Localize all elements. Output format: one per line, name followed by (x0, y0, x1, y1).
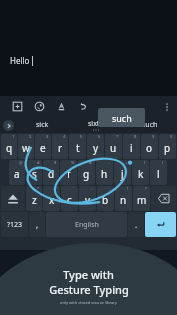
staticText: 5 (80, 134, 83, 139)
staticText: ?123 (7, 220, 23, 230)
staticText: a (14, 167, 20, 181)
staticText: 9 (152, 134, 155, 139)
button[interactable]: - (96, 160, 113, 185)
staticText: " (55, 186, 57, 191)
staticText: g (83, 167, 90, 181)
button[interactable]: , (29, 212, 45, 237)
staticText: z (32, 193, 37, 207)
staticText: n (120, 193, 127, 207)
button[interactable]: 7 (105, 134, 122, 159)
staticText: ? (145, 186, 147, 191)
staticText: m (137, 193, 147, 207)
button[interactable]: Backspace (151, 186, 176, 211)
staticText: ( (144, 160, 146, 165)
button[interactable]: 1 (1, 134, 17, 159)
staticText: % (71, 160, 75, 165)
staticText: s (32, 167, 37, 181)
staticText: x (49, 193, 55, 207)
button[interactable]: ; (97, 186, 114, 211)
button[interactable]: ! (115, 186, 132, 211)
staticText: 0 (170, 134, 173, 139)
staticText: & (89, 160, 92, 165)
button[interactable]: ) (150, 160, 167, 185)
button[interactable]: @ (9, 160, 25, 185)
button[interactable]: English (46, 212, 127, 237)
button[interactable]: ?123 (1, 212, 28, 237)
staticText: j (121, 167, 124, 181)
staticText: f (67, 167, 71, 181)
staticText: 3 (46, 134, 49, 139)
button[interactable]: sixth (69, 117, 123, 133)
button[interactable]: & (78, 160, 95, 185)
staticText: 8 (134, 134, 137, 139)
button[interactable]: Add content (6, 96, 28, 117)
button[interactable]: ' (61, 186, 78, 211)
button[interactable]: # (26, 160, 42, 185)
staticText: . (135, 219, 138, 230)
staticText: u (110, 141, 117, 155)
button[interactable]: % (60, 160, 77, 185)
staticText: English (75, 220, 99, 230)
staticText: k (138, 167, 144, 181)
button[interactable]: . (128, 212, 144, 237)
staticText: Gesture Typing (49, 282, 129, 297)
staticText: Hello (10, 55, 30, 66)
staticText: i (130, 141, 133, 155)
button[interactable]: : (79, 186, 96, 211)
button[interactable]: " (43, 186, 60, 211)
staticText: y (93, 141, 99, 155)
staticText: 4 (63, 134, 66, 139)
staticText: v (85, 193, 91, 207)
staticText: such (142, 120, 158, 130)
staticText: # (37, 160, 40, 165)
button[interactable]: such (98, 108, 145, 127)
button[interactable]: such (123, 117, 177, 133)
staticText: p (164, 141, 171, 155)
button[interactable]: 9 (141, 134, 158, 159)
button[interactable]: 5 (69, 134, 86, 159)
staticText: 6 (98, 134, 101, 139)
staticText: only with closed source library (60, 300, 117, 305)
button[interactable]: More options (157, 97, 177, 117)
staticText: 1 (12, 134, 15, 139)
button[interactable]: 2 (18, 134, 34, 159)
staticText: sick (36, 120, 49, 130)
staticText: b (102, 193, 109, 207)
staticText: w (22, 141, 30, 155)
staticText: e (40, 141, 46, 155)
button[interactable]: Themes (28, 96, 50, 117)
staticText: sixth (88, 119, 104, 129)
button[interactable]: Text formatting (50, 96, 72, 117)
staticText: - (108, 160, 110, 165)
staticText: q (6, 141, 13, 155)
staticText: 7 (116, 134, 119, 139)
staticText: t (76, 141, 80, 155)
staticText: ; (109, 186, 111, 191)
button[interactable]: + (114, 160, 131, 185)
staticText: ! (127, 186, 129, 191)
staticText: Type with (63, 267, 114, 282)
button[interactable]: * (26, 186, 42, 211)
staticText: + (125, 160, 128, 165)
staticText: 2 (29, 134, 32, 139)
button[interactable]: Undo (72, 96, 94, 117)
staticText: $ (54, 160, 57, 165)
button[interactable]: 8 (123, 134, 140, 159)
button[interactable]: 0 (159, 134, 176, 159)
button[interactable]: 4 (52, 134, 68, 159)
button[interactable]: Enter (145, 212, 176, 237)
staticText: d (48, 167, 55, 181)
button[interactable]: $ (43, 160, 59, 185)
button[interactable]: 3 (35, 134, 51, 159)
button[interactable]: sick (16, 117, 69, 133)
button[interactable]: 6 (87, 134, 104, 159)
button[interactable]: ? (133, 186, 150, 211)
staticText: h (101, 167, 108, 181)
staticText: ) (162, 160, 164, 165)
staticText: @ (19, 160, 23, 165)
staticText: : (91, 186, 93, 191)
button[interactable]: Expand suggestions (3, 120, 14, 131)
staticText: c (67, 193, 72, 207)
button[interactable]: ( (132, 160, 149, 185)
button[interactable]: Shift (1, 186, 25, 211)
